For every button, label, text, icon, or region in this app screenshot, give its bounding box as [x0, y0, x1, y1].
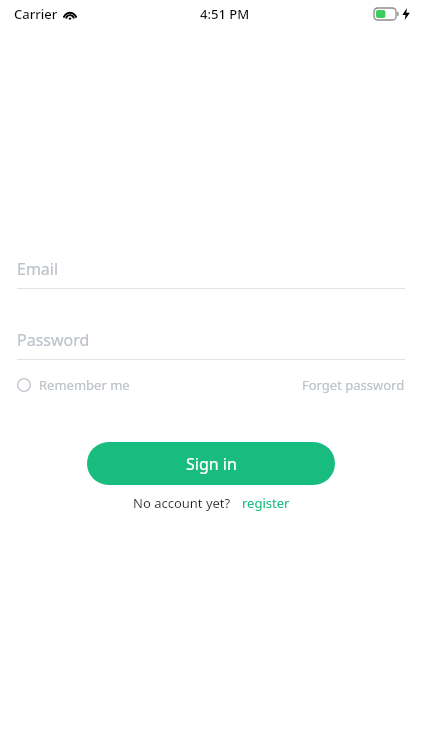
staticText: Email — [17, 258, 59, 280]
button[interactable]: Remember me checkbox — [17, 372, 130, 398]
button[interactable]: register — [242, 494, 290, 512]
other: Remember me checkbox — [17, 378, 31, 392]
staticText: register — [242, 494, 290, 512]
button[interactable]: Forget password — [302, 372, 405, 398]
staticText: Remember me — [39, 376, 130, 394]
staticText: Sign in — [186, 453, 237, 475]
staticText: No account yet? — [133, 494, 231, 512]
staticText: Password — [17, 329, 90, 351]
button[interactable]: Sign in — [87, 442, 335, 485]
button[interactable]: Password — [17, 321, 405, 359]
button[interactable]: Email — [17, 250, 405, 288]
staticText: Carrier — [14, 5, 58, 23]
staticText: Forget password — [302, 376, 405, 394]
staticText: 4:51 PM — [200, 5, 250, 23]
